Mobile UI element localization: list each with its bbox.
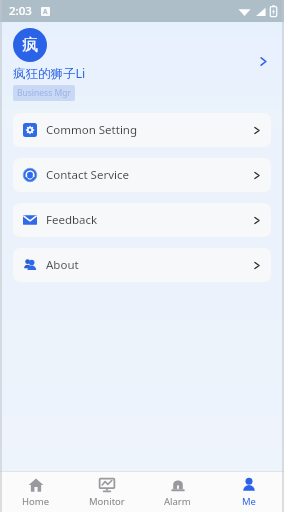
staticText: Business Mgr — [17, 87, 71, 99]
button[interactable]: About — [13, 248, 271, 282]
staticText: A — [43, 7, 48, 16]
button[interactable]: Common Setting — [13, 113, 271, 147]
button[interactable]: 疯 — [0, 22, 284, 110]
staticText: Monitor — [89, 495, 125, 508]
staticText: Me — [242, 495, 256, 508]
button[interactable]: Alarm — [142, 472, 213, 512]
button[interactable]: Monitor — [71, 472, 142, 512]
staticText: Home — [22, 495, 50, 508]
staticText: About — [46, 257, 79, 273]
button[interactable]: Feedback — [13, 203, 271, 237]
button[interactable]: Contact Service — [13, 158, 271, 192]
staticText: Contact Service — [46, 167, 129, 183]
staticText: 2:03 — [9, 3, 32, 19]
staticText: Common Setting — [46, 122, 138, 138]
button[interactable]: Me — [213, 472, 284, 512]
staticText: 疯狂的狮子Li — [13, 65, 86, 82]
button[interactable]: Home — [0, 472, 71, 512]
staticText: Alarm — [164, 495, 191, 508]
staticText: Feedback — [46, 212, 98, 228]
staticText: 疯 — [22, 35, 38, 55]
button[interactable]: Open profile details — [254, 52, 272, 70]
